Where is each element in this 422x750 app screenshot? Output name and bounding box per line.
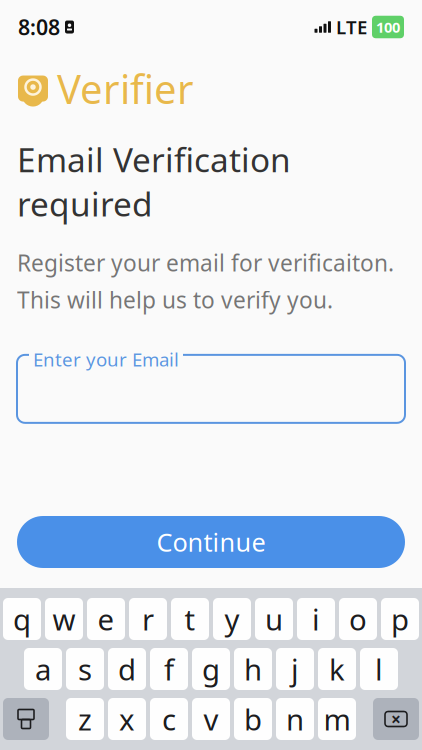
staticText: LTE <box>336 15 367 39</box>
button[interactable]: f <box>150 648 188 690</box>
button[interactable]: o <box>339 598 377 640</box>
button[interactable]: j <box>276 648 314 690</box>
button[interactable]: k <box>318 648 356 690</box>
button[interactable]: d <box>108 648 146 690</box>
button[interactable]: e <box>87 598 125 640</box>
button[interactable]: h <box>234 648 272 690</box>
button[interactable]: Enter your Email <box>17 355 405 423</box>
button[interactable]: Continue <box>17 516 405 568</box>
button[interactable]: i <box>297 598 335 640</box>
button[interactable]: a <box>24 648 62 690</box>
staticText: s <box>78 649 92 688</box>
staticText: q <box>13 599 31 638</box>
staticText: w <box>52 599 75 638</box>
staticText: This will help us to verify you. <box>17 285 333 315</box>
button[interactable]: b <box>234 698 272 740</box>
staticText: i <box>312 599 320 638</box>
button[interactable]: c <box>150 698 188 740</box>
staticText: o <box>349 599 367 638</box>
button[interactable]: m <box>318 698 356 740</box>
button[interactable]: w <box>45 598 83 640</box>
staticText: Continue <box>156 525 265 559</box>
button[interactable]: Delete <box>373 698 419 740</box>
staticText: e <box>97 599 114 638</box>
button[interactable]: q <box>3 598 41 640</box>
staticText: h <box>244 649 262 688</box>
button[interactable]: t <box>171 598 209 640</box>
staticText: c <box>162 699 176 738</box>
staticText: Register your email for verificaiton. <box>17 248 394 278</box>
button[interactable]: s <box>66 648 104 690</box>
staticText: b <box>244 699 262 738</box>
button[interactable]: p <box>381 598 419 640</box>
button[interactable]: l <box>360 648 398 690</box>
staticText: a <box>35 649 51 688</box>
staticText: z <box>78 699 92 738</box>
staticText: 100 <box>376 17 400 37</box>
button[interactable]: u <box>255 598 293 640</box>
staticText: k <box>329 649 345 688</box>
staticText: u <box>265 599 283 638</box>
button[interactable]: n <box>276 698 314 740</box>
staticText: r <box>142 599 154 638</box>
staticText: Email Verification required <box>17 137 291 226</box>
staticText: Verifier <box>57 62 194 115</box>
staticText: 8:08 <box>18 13 60 41</box>
staticText: t <box>184 599 195 638</box>
button[interactable]: g <box>192 648 230 690</box>
staticText: Enter your Email <box>33 347 179 372</box>
button[interactable]: x <box>108 698 146 740</box>
button[interactable]: z <box>66 698 104 740</box>
staticText: n <box>286 699 304 738</box>
staticText: j <box>291 649 299 688</box>
button[interactable]: r <box>129 598 167 640</box>
staticText: p <box>391 599 409 638</box>
button[interactable]: y <box>213 598 251 640</box>
staticText: × <box>391 707 401 730</box>
button[interactable]: v <box>192 698 230 740</box>
staticText: d <box>118 649 136 688</box>
staticText: y <box>224 599 239 638</box>
button[interactable]: Shift <box>3 698 49 740</box>
staticText: x <box>119 699 135 738</box>
staticText: f <box>164 649 174 688</box>
staticText: m <box>323 699 350 738</box>
staticText: l <box>375 649 383 688</box>
staticText: g <box>202 649 220 688</box>
staticText: v <box>203 699 218 738</box>
